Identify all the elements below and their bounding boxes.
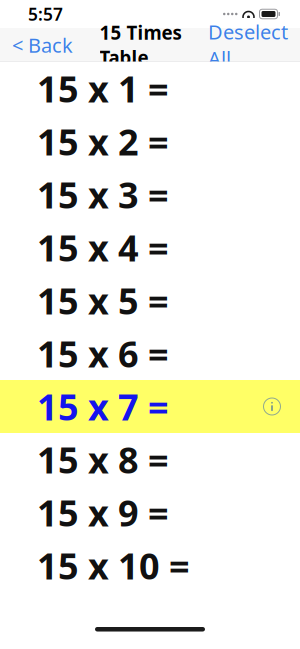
staticText: 15 x 9 = <box>37 489 169 536</box>
button[interactable]: 15 x 3 = <box>0 168 300 221</box>
button[interactable]: 15 x 6 = <box>0 327 300 380</box>
button[interactable]: 15 x 2 = <box>0 115 300 168</box>
button[interactable]: < Back <box>0 24 83 66</box>
button[interactable]: 15 x 8 = <box>0 433 300 486</box>
staticText: 15 x 4 = <box>37 224 169 271</box>
staticText: 15 x 3 = <box>37 171 169 218</box>
staticText: 15 x 10 = <box>37 542 190 589</box>
staticText: 15 Times Table <box>99 20 181 70</box>
staticText: 15 x 6 = <box>37 330 169 377</box>
staticText: 15 x 7 = <box>37 383 169 430</box>
staticText: Deselect All <box>208 18 288 71</box>
staticText: 5:57 <box>28 2 63 25</box>
staticText: 15 x 2 = <box>37 118 169 165</box>
staticText: < Back <box>12 32 73 58</box>
button[interactable]: 15 x 10 = <box>0 539 300 592</box>
button[interactable]: 15 x 1 = <box>0 62 300 115</box>
button[interactable]: 15 x 5 = <box>0 274 300 327</box>
staticText: 15 x 5 = <box>37 277 169 324</box>
button[interactable]: Deselect All <box>198 10 300 79</box>
staticText: 15 x 8 = <box>37 436 169 483</box>
staticText: 15 x 1 = <box>37 65 169 112</box>
button[interactable]: 15 x 4 = <box>0 221 300 274</box>
button[interactable]: 15 x 9 = <box>0 486 300 539</box>
button[interactable]: 15 x 7 = <box>0 380 300 433</box>
